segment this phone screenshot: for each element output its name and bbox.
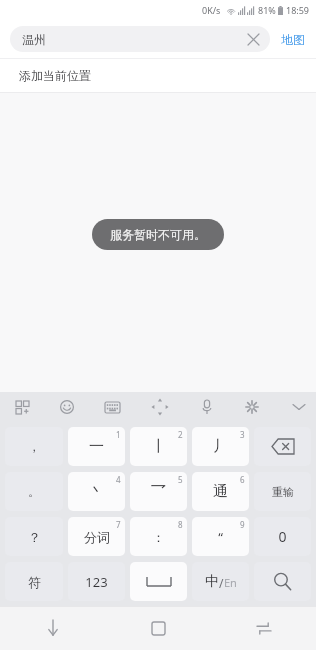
staticText: 添加当前位置 <box>19 68 91 83</box>
button[interactable]: 重输 <box>254 472 311 511</box>
button[interactable]: Emoji <box>51 392 83 422</box>
staticText: 3 <box>240 429 245 440</box>
button[interactable]: 0 <box>254 517 311 556</box>
staticText: 2 <box>178 429 183 440</box>
staticText: 丿 <box>213 437 228 456</box>
staticText: 一 <box>89 437 104 456</box>
staticText: 丶 <box>89 482 104 501</box>
button[interactable]: 。 <box>5 472 63 511</box>
button[interactable]: Settings <box>236 392 268 422</box>
button[interactable]: “ <box>192 517 249 556</box>
staticText: ， <box>28 439 40 454</box>
button[interactable]: 一 <box>68 427 125 466</box>
staticText: 0K/s <box>202 4 221 16</box>
staticText: 9 <box>240 519 245 530</box>
button[interactable]: 中 <box>192 562 249 601</box>
staticText: 81% <box>258 4 276 16</box>
button[interactable]: 丿 <box>192 427 249 466</box>
staticText: “ <box>218 528 223 546</box>
staticText: 通 <box>213 482 228 501</box>
button[interactable]: Hide keyboard <box>283 392 315 422</box>
button[interactable]: 添加当前位置 <box>0 59 316 92</box>
staticText: 7 <box>116 519 121 530</box>
button[interactable]: Keyboard layout <box>96 392 128 422</box>
button[interactable]: Space <box>130 562 187 601</box>
button[interactable]: 通 <box>192 472 249 511</box>
staticText: 1 <box>116 429 121 440</box>
staticText: 重输 <box>272 485 294 499</box>
staticText: ： <box>152 529 165 545</box>
button[interactable]: 符 <box>5 562 63 601</box>
button[interactable]: 丶 <box>68 472 125 511</box>
button[interactable]: ？ <box>5 517 63 556</box>
button[interactable]: Move cursor <box>144 392 176 422</box>
button[interactable]: 乛 <box>130 472 187 511</box>
staticText: 0 <box>278 527 287 546</box>
button[interactable]: ， <box>5 427 63 466</box>
staticText: 5 <box>178 474 183 485</box>
staticText: / <box>219 575 224 591</box>
staticText: 温州 <box>22 32 46 47</box>
staticText: 符 <box>28 574 41 590</box>
staticText: 乛 <box>151 482 166 501</box>
button[interactable]: Backspace <box>254 427 311 466</box>
staticText: 4 <box>116 474 121 485</box>
button[interactable]: ： <box>130 517 187 556</box>
button[interactable]: Switch input method <box>211 606 316 650</box>
staticText: ？ <box>28 529 41 545</box>
staticText: 8 <box>178 519 183 530</box>
button[interactable]: 123 <box>68 562 125 601</box>
staticText: 服务暂时不可用。 <box>110 227 206 242</box>
button[interactable]: Hide keyboard <box>0 606 106 650</box>
button[interactable]: Voice input <box>191 392 223 422</box>
button[interactable]: 分词 <box>68 517 125 556</box>
button[interactable]: Search <box>254 562 311 601</box>
staticText: 18:59 <box>286 4 310 16</box>
staticText: 123 <box>85 573 108 591</box>
staticText: 丨 <box>151 437 166 456</box>
staticText: 分词 <box>84 529 110 545</box>
staticText: 。 <box>28 484 40 499</box>
button[interactable]: 温州 <box>10 26 270 52</box>
button[interactable]: 地图 <box>270 20 316 58</box>
button[interactable]: Apps <box>6 392 38 422</box>
staticText: En <box>224 575 237 590</box>
staticText: 地图 <box>281 32 305 47</box>
button[interactable]: Home <box>106 606 211 650</box>
staticText: 6 <box>240 474 245 485</box>
button[interactable]: 丨 <box>130 427 187 466</box>
staticText: 中 <box>205 573 219 591</box>
button[interactable]: Clear <box>240 26 266 52</box>
